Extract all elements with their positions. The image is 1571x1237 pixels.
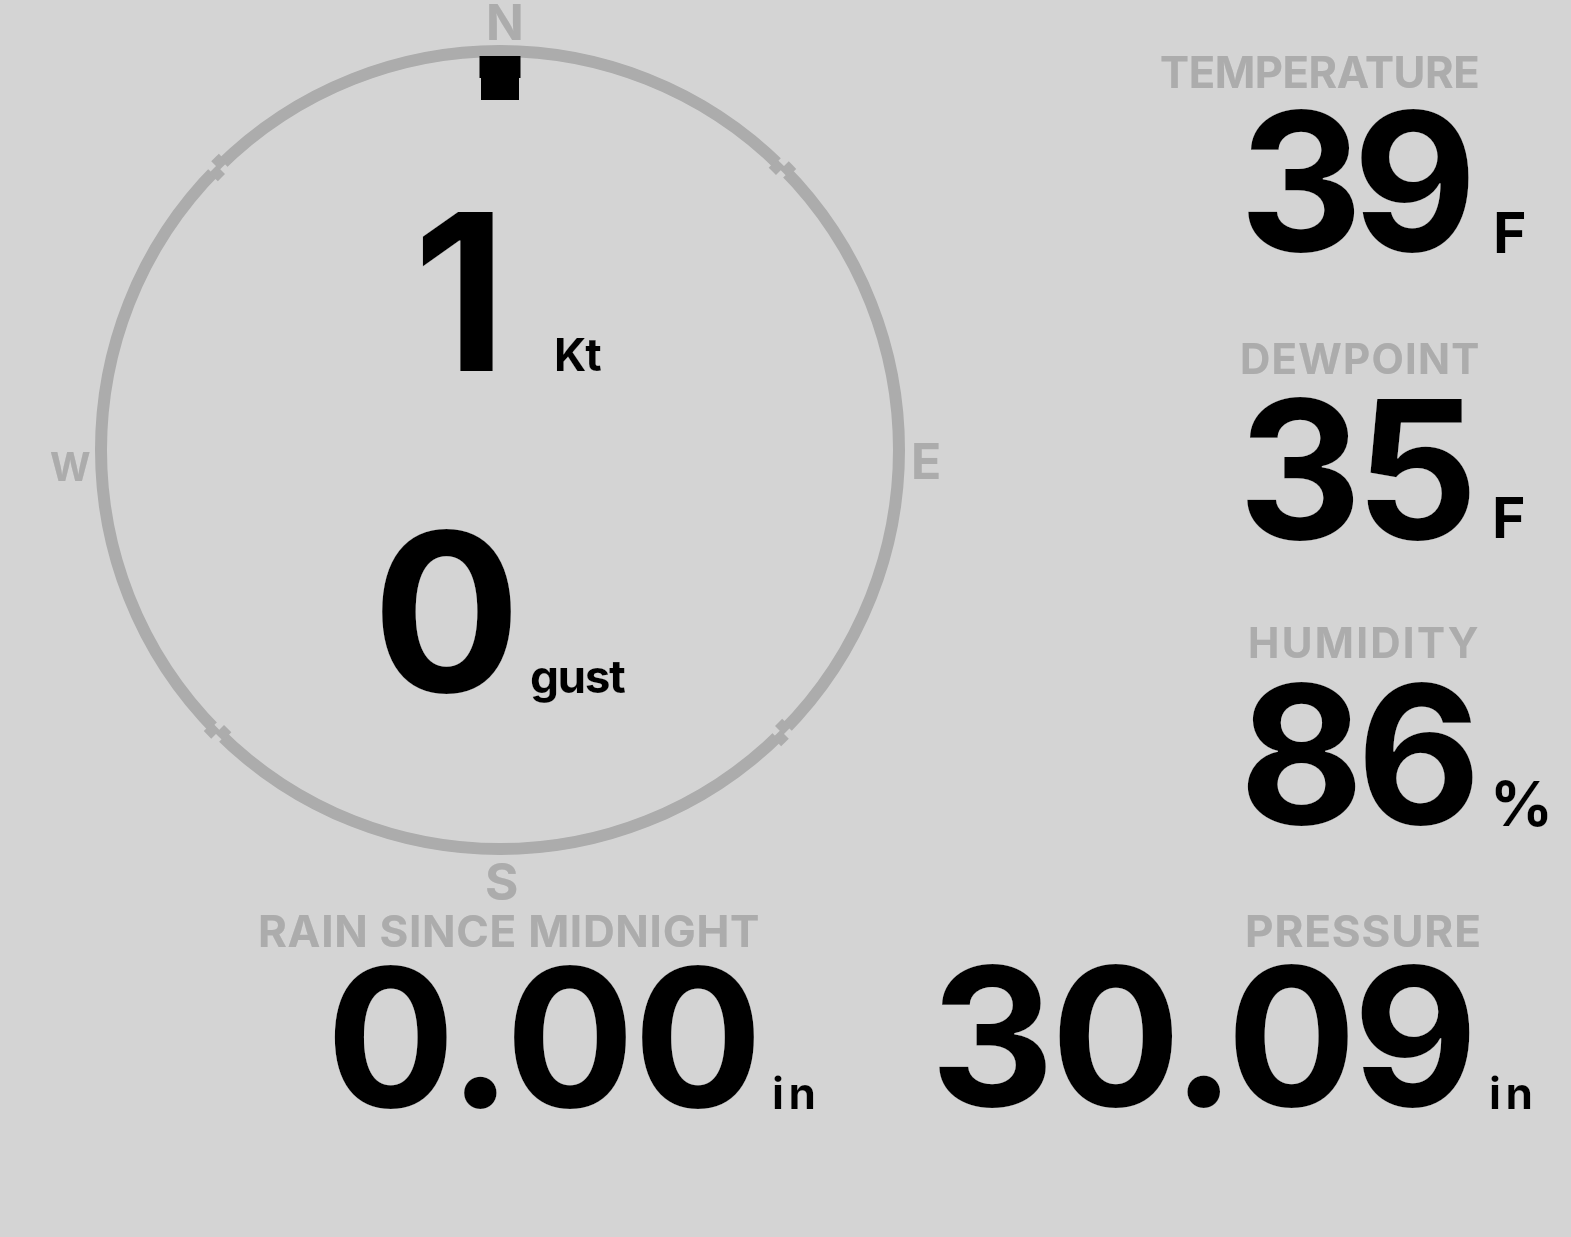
button[interactable]: Dewpoint 35 F <box>1080 330 1571 560</box>
button[interactable]: Wind rose, 1 knot from the north, gustin… <box>95 45 905 855</box>
staticText: RAIN SINCE MIDNIGHT <box>258 904 761 957</box>
staticText: W <box>50 443 91 490</box>
staticText: in <box>772 1066 821 1119</box>
staticText: E <box>911 431 942 491</box>
staticText: N <box>486 0 524 52</box>
staticText: F <box>1492 483 1526 552</box>
staticText: % <box>1490 766 1553 841</box>
staticText: Kt <box>554 327 601 381</box>
staticText: in <box>1489 1066 1538 1119</box>
staticText: 35 <box>1238 353 1472 585</box>
staticText: HUMIDITY <box>1248 617 1481 668</box>
staticText: gust <box>530 648 625 704</box>
button[interactable]: Humidity 86 percent <box>1080 610 1571 850</box>
button[interactable]: Temperature 39 F <box>1080 40 1571 280</box>
staticText: 1 <box>413 160 507 424</box>
staticText: 0.00 <box>326 921 762 1153</box>
button[interactable]: Rain since midnight 0.00 in <box>220 900 860 1130</box>
staticText: 30.09 <box>930 919 1475 1153</box>
staticText: PRESSURE <box>1245 904 1482 957</box>
staticText: DEWPOINT <box>1240 333 1481 384</box>
staticText: 39 <box>1239 65 1467 297</box>
staticText: 0 <box>372 478 522 745</box>
staticText: S <box>485 851 519 913</box>
button[interactable]: Pressure 30.09 in <box>900 900 1560 1130</box>
staticText: 86 <box>1239 638 1474 870</box>
staticText: TEMPERATURE <box>1160 46 1480 99</box>
staticText: F <box>1493 198 1527 267</box>
